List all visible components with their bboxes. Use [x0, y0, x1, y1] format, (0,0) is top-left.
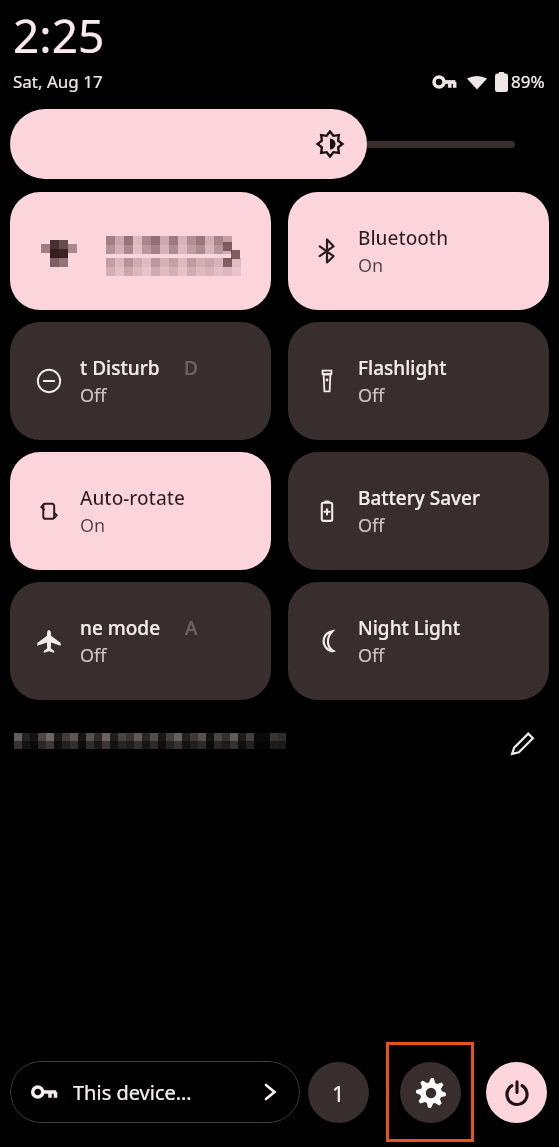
staticText: Auto-rotate — [80, 485, 185, 511]
button[interactable]: Bluetooth — [288, 192, 549, 310]
button[interactable]: ne mode — [10, 582, 271, 700]
button[interactable]: This device… — [10, 1061, 300, 1123]
staticText: Off — [80, 643, 107, 668]
staticText: ne mode — [80, 615, 161, 641]
staticText: 2:25 — [13, 4, 105, 67]
staticText: 1 — [332, 1078, 345, 1108]
staticText: Off — [358, 383, 385, 408]
staticText: 89% — [511, 70, 545, 93]
staticText: This device… — [73, 1079, 192, 1106]
button[interactable]: Auto-rotate — [10, 452, 271, 570]
button[interactable]: Settings — [386, 1042, 474, 1142]
button[interactable]: Power — [486, 1062, 547, 1123]
button[interactable]: Battery Saver — [288, 452, 549, 570]
button[interactable]: Brightness — [10, 109, 549, 179]
staticText: Off — [80, 383, 107, 408]
button[interactable]: Flashlight — [288, 322, 549, 440]
staticText: A — [185, 615, 198, 641]
button[interactable]: Night Light — [288, 582, 549, 700]
staticText: t Disturb — [80, 355, 160, 381]
button[interactable]: Users — [308, 1062, 369, 1123]
staticText: Off — [358, 643, 385, 668]
button[interactable]: t Disturb — [10, 322, 271, 440]
staticText: Bluetooth — [358, 225, 449, 251]
staticText: Flashlight — [358, 355, 447, 381]
staticText: D — [184, 355, 198, 381]
staticText: Night Light — [358, 615, 461, 641]
button[interactable] — [10, 192, 271, 310]
staticText: On — [358, 253, 384, 278]
staticText: Off — [358, 513, 385, 538]
staticText: Battery Saver — [358, 485, 481, 511]
staticText: On — [80, 513, 106, 538]
staticText: Sat, Aug 17 — [13, 70, 103, 93]
button[interactable]: Edit tiles — [499, 721, 545, 767]
